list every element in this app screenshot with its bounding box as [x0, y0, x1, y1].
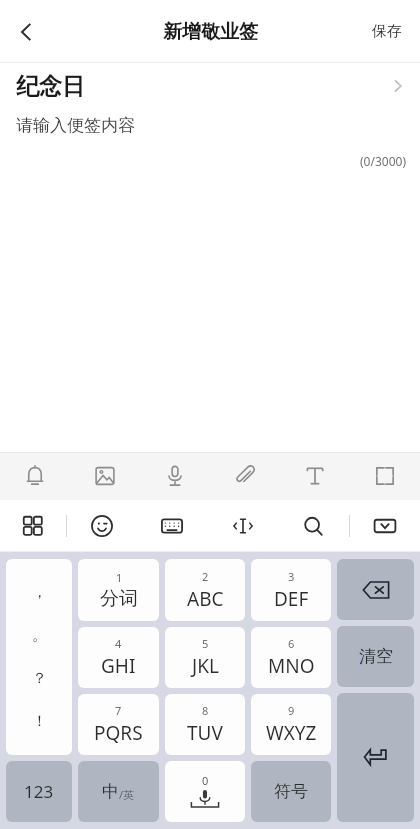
- staticText: 3: [288, 569, 295, 584]
- button[interactable]: 纪念日: [0, 63, 420, 109]
- staticText: 0: [202, 773, 209, 788]
- staticText: 1: [116, 570, 123, 585]
- staticText: 中: [102, 781, 119, 802]
- button[interactable]: 清空: [337, 626, 414, 687]
- staticText: 符号: [274, 781, 308, 802]
- staticText: 分词: [100, 587, 138, 611]
- button[interactable]: Fullscreen: [350, 452, 420, 500]
- button[interactable]: Keyboard: [137, 500, 207, 552]
- button[interactable]: Backspace: [337, 559, 414, 620]
- staticText: ？: [32, 669, 47, 688]
- button[interactable]: Back: [0, 6, 52, 58]
- staticText: 保存: [372, 22, 402, 41]
- button[interactable]: 3: [251, 559, 331, 621]
- staticText: /英: [119, 787, 135, 802]
- staticText: 123: [24, 780, 54, 803]
- button[interactable]: 9: [251, 694, 331, 755]
- button[interactable]: Image: [70, 452, 140, 500]
- staticText: JKL: [192, 653, 219, 679]
- staticText: 9: [288, 703, 295, 718]
- button[interactable]: 123: [6, 761, 72, 822]
- button[interactable]: Enter: [337, 693, 414, 822]
- button[interactable]: 4: [78, 627, 159, 688]
- staticText: 8: [202, 703, 209, 718]
- staticText: 。: [32, 626, 47, 645]
- button[interactable]: 0: [165, 761, 245, 822]
- button[interactable]: 保存: [354, 0, 420, 63]
- staticText: 纪念日: [16, 72, 85, 101]
- staticText: DEF: [274, 586, 309, 612]
- button[interactable]: Search: [278, 500, 349, 552]
- staticText: 5: [202, 636, 209, 651]
- button[interactable]: Voice: [140, 452, 210, 500]
- staticText: 新增敬业签: [163, 20, 258, 44]
- button[interactable]: Text format: [280, 452, 350, 500]
- staticText: GHI: [101, 653, 136, 679]
- staticText: 请输入便签内容: [16, 115, 135, 136]
- staticText: 7: [115, 703, 122, 718]
- staticText: PQRS: [94, 720, 143, 746]
- button[interactable]: 符号: [251, 761, 331, 822]
- staticText: 6: [288, 636, 295, 651]
- button[interactable]: ，: [6, 559, 72, 755]
- button[interactable]: Move cursor: [207, 500, 278, 552]
- button[interactable]: 中: [78, 761, 159, 822]
- button[interactable]: Reminder: [0, 452, 70, 500]
- button[interactable]: Hide keyboard: [350, 500, 420, 552]
- staticText: ABC: [187, 586, 224, 612]
- staticText: MNO: [268, 653, 315, 679]
- button[interactable]: Panels: [0, 500, 66, 552]
- staticText: TUV: [187, 720, 223, 746]
- button[interactable]: 2: [165, 559, 245, 621]
- button[interactable]: 1: [78, 559, 159, 621]
- button[interactable]: Emoji: [67, 500, 137, 552]
- button[interactable]: 8: [165, 694, 245, 755]
- staticText: (0/3000): [0, 153, 406, 169]
- staticText: 4: [115, 636, 122, 651]
- button[interactable]: 6: [251, 627, 331, 688]
- staticText: ，: [32, 583, 47, 602]
- staticText: 清空: [359, 646, 393, 667]
- staticText: WXYZ: [266, 720, 317, 746]
- button[interactable]: 5: [165, 627, 245, 688]
- button[interactable]: Attachment: [210, 452, 280, 500]
- staticText: ！: [32, 712, 47, 731]
- button[interactable]: 7: [78, 694, 159, 755]
- staticText: 2: [202, 569, 209, 584]
